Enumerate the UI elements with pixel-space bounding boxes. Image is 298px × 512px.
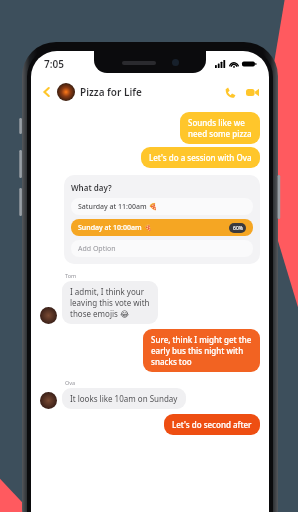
button[interactable]: Sounds like we need some pizza [180, 112, 260, 144]
button[interactable]: It looks like 10am on Sunday [62, 388, 186, 409]
staticText: Add Option [78, 244, 116, 254]
staticText: I admit, I think your leaving this vote … [70, 286, 150, 319]
button[interactable]: Add Option [71, 240, 253, 257]
button[interactable]: I admit, I think your leaving this vote … [62, 281, 158, 324]
button[interactable]: Call [221, 83, 239, 101]
staticText: Pizza for Life [80, 85, 142, 99]
staticText: 7:05 [44, 57, 64, 71]
staticText: Let's do a session with Ova [149, 152, 252, 163]
button[interactable]: Let's do second after [164, 414, 260, 435]
staticText: Tom [65, 272, 77, 279]
staticText: Sounds like we need some pizza [188, 117, 252, 139]
staticText: 60% [233, 225, 243, 232]
staticText: Sure, think I might get the early bus th… [151, 334, 252, 367]
button[interactable]: Sure, think I might get the early bus th… [143, 329, 260, 372]
staticText: Let's do second after [172, 419, 252, 430]
button[interactable]: Back [39, 84, 55, 100]
button[interactable]: Let's do a session with Ova [141, 147, 260, 168]
staticText: Ova [65, 379, 76, 386]
staticText: It looks like 10am on Sunday [70, 393, 178, 404]
staticText: What day? [71, 182, 112, 193]
button[interactable]: Saturday at 11:00am 🍕 [71, 198, 253, 215]
staticText: Saturday at 11:00am 🍕 [78, 202, 158, 212]
staticText: Sunday at 10:00am 🍕 [78, 223, 153, 233]
button[interactable]: Sunday at 10:00am 🍕 [71, 219, 253, 236]
button[interactable]: Video call [243, 83, 261, 101]
